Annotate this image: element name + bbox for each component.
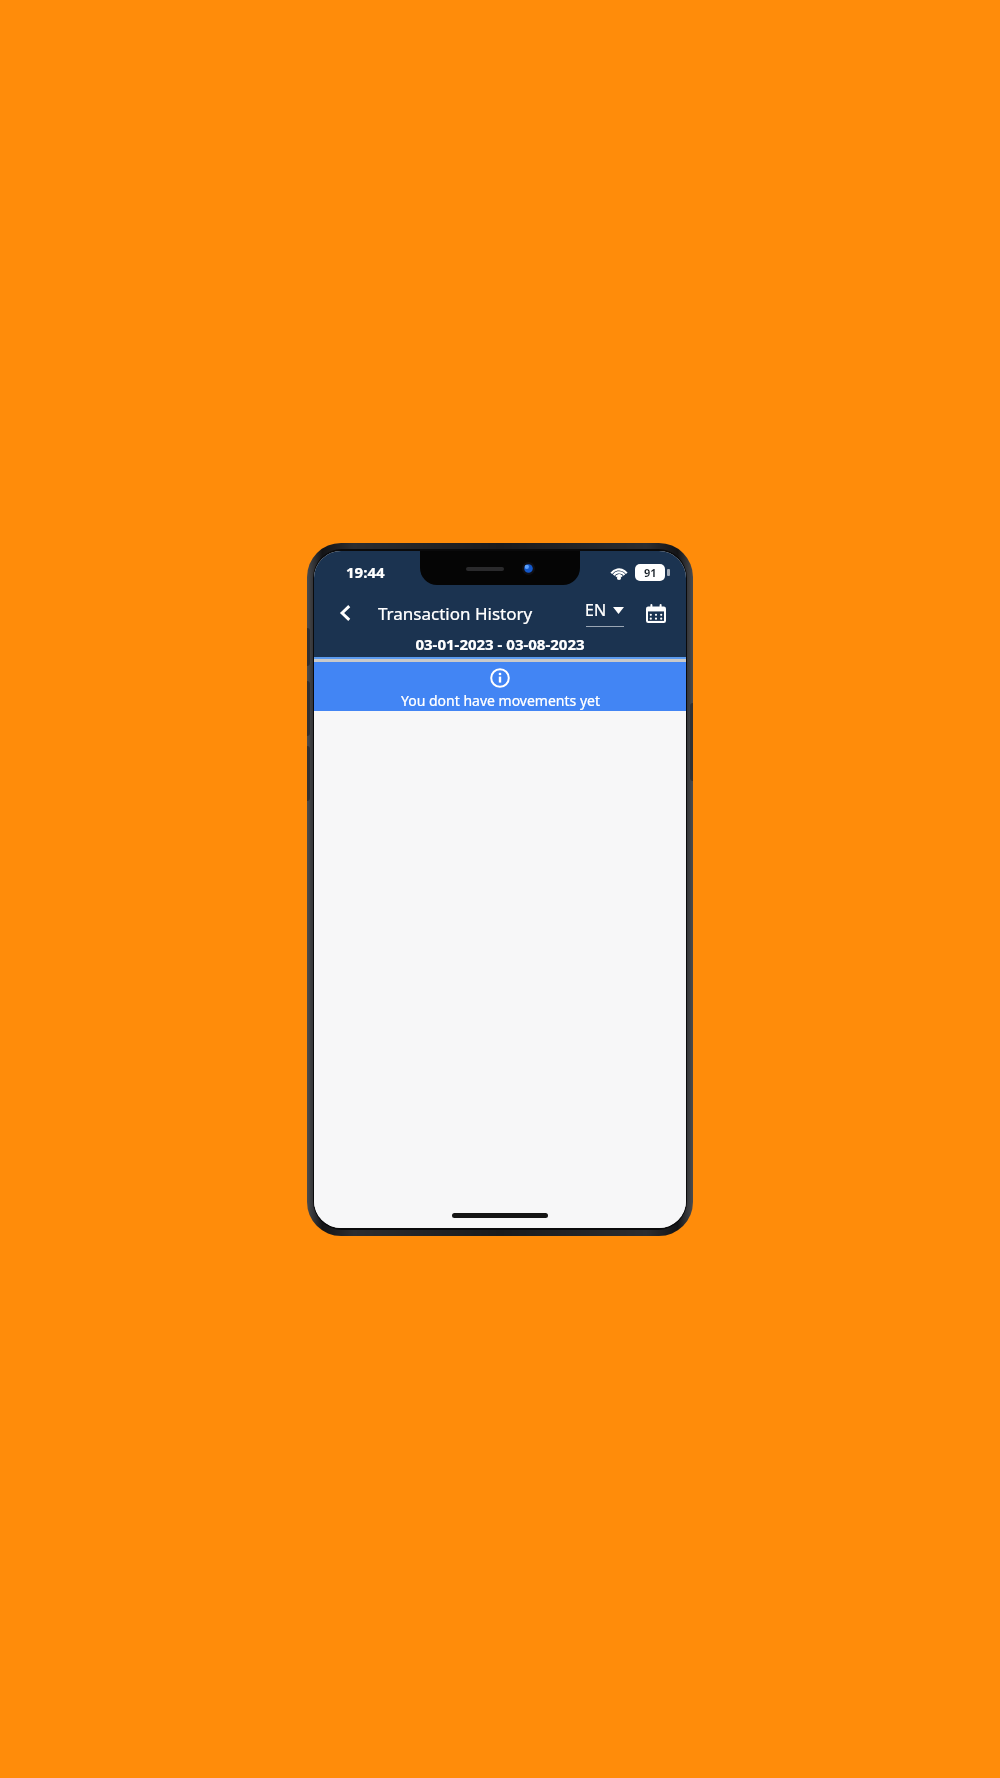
staticText: 91 bbox=[644, 565, 657, 580]
staticText: Transaction History bbox=[378, 602, 533, 625]
button[interactable]: EN bbox=[583, 599, 626, 627]
button[interactable]: You dont have movements yet bbox=[314, 662, 686, 711]
button[interactable]: Select date range bbox=[640, 597, 672, 629]
staticText: 03-01-2023 - 03-08-2023 bbox=[415, 634, 585, 654]
staticText: EN bbox=[585, 599, 607, 621]
staticText: You dont have movements yet bbox=[401, 691, 600, 710]
staticText: 19:44 bbox=[346, 562, 385, 582]
button[interactable]: Back bbox=[328, 595, 364, 631]
